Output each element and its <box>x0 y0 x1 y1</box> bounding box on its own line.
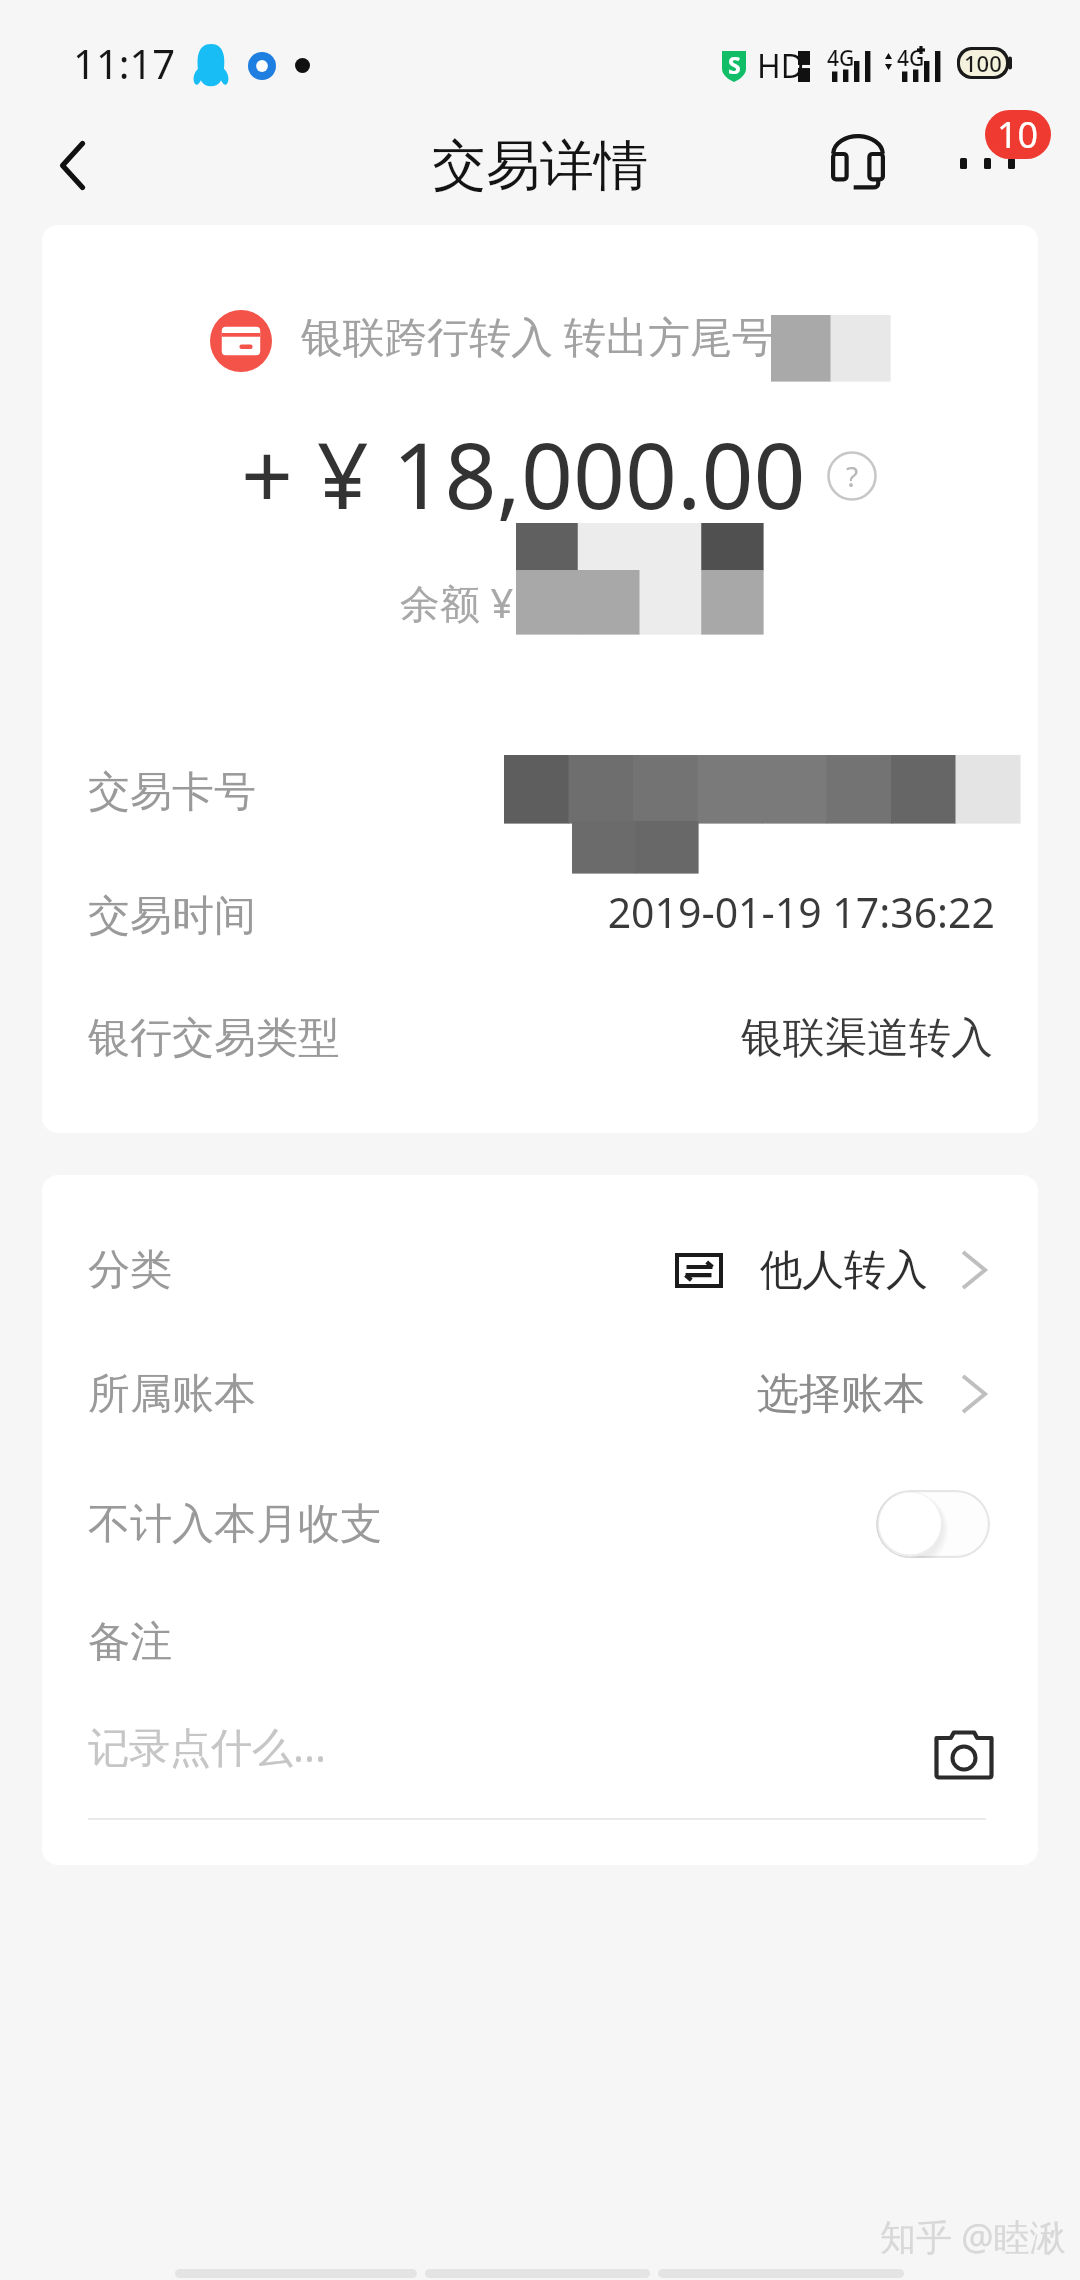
staticText: 备注 <box>88 1616 172 1669</box>
staticText: 他人转入 <box>760 1244 928 1297</box>
button[interactable]: 不计入本月收支 <box>42 1464 1038 1584</box>
staticText: 交易卡号 <box>88 766 256 819</box>
staticText: 知乎 @睦湫 <box>880 2212 1066 2261</box>
staticText: 4G <box>827 44 855 73</box>
staticText: S <box>728 49 741 80</box>
button[interactable]: 返回 <box>24 118 120 212</box>
staticText: 交易详情 <box>432 132 648 200</box>
button[interactable]: 帮助 <box>827 451 877 501</box>
staticText: 银联跨行转入 转出方尾号 <box>301 307 774 364</box>
staticText: 分类 <box>88 1244 172 1297</box>
staticText: 10 <box>997 110 1039 159</box>
staticText: 银行交易类型 <box>88 1012 340 1065</box>
staticText: 4G <box>897 44 925 73</box>
staticText: ? <box>846 457 859 495</box>
staticText: 不计入本月收支 <box>88 1498 382 1551</box>
staticText: 11:17 <box>73 36 176 90</box>
staticText: 银联渠道转入 <box>42 1012 993 1065</box>
staticText: + ¥ 18,000.00 <box>241 412 806 536</box>
staticText: 所属账本 <box>88 1368 256 1421</box>
staticText: 100 <box>964 48 1002 78</box>
staticText: 余额 ¥1 <box>400 575 537 630</box>
button[interactable]: 更多 <box>940 120 1040 208</box>
staticText: 记录点什么... <box>88 1718 326 1774</box>
button[interactable]: 记录点什么... <box>88 1700 908 1800</box>
staticText: 2019-01-19 17:36:22 <box>42 884 995 940</box>
staticText: HD <box>757 44 805 88</box>
button[interactable]: 拍照 <box>926 1722 1002 1788</box>
button[interactable]: 分类 <box>42 1210 1038 1330</box>
button[interactable]: 不计入本月收支开关 <box>876 1490 990 1558</box>
button[interactable]: 客服 <box>803 115 913 207</box>
staticText: 交易时间 <box>88 890 256 943</box>
button[interactable]: 所属账本 <box>42 1334 1038 1454</box>
staticText: 选择账本 <box>757 1368 925 1421</box>
